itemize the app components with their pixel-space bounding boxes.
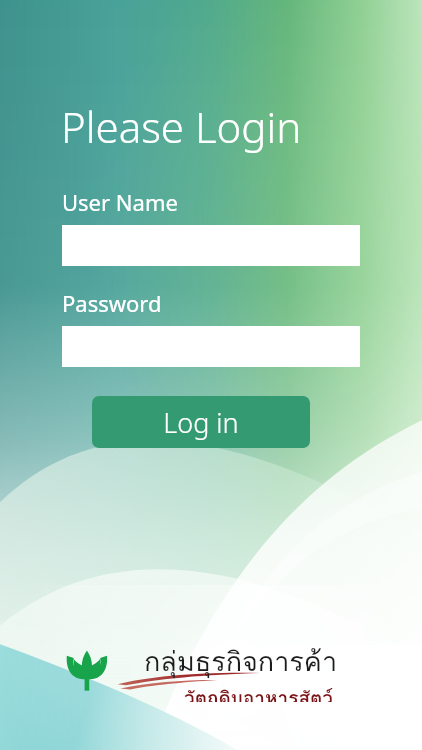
staticText: วัตถุดิบอาหารสัตว์: [184, 683, 333, 702]
button[interactable]: Log in: [92, 396, 310, 448]
staticText: Log in: [163, 404, 239, 441]
staticText: Please Login: [61, 98, 302, 155]
staticText: Password: [62, 288, 162, 318]
staticText: กลุ่มธุรกิจการค้า: [144, 640, 338, 683]
staticText: User Name: [62, 187, 178, 217]
